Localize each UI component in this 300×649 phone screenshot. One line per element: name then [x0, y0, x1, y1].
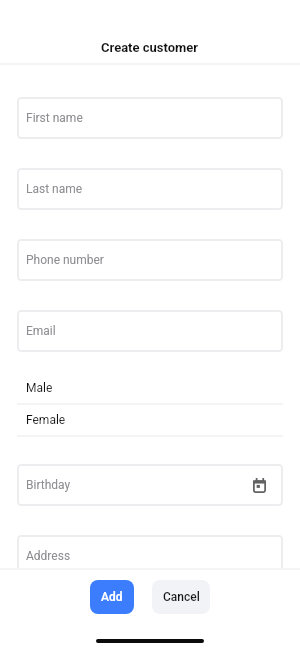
button[interactable]: Male	[17, 372, 283, 403]
staticText: Add	[101, 590, 123, 604]
staticText: Female	[26, 413, 66, 427]
button[interactable]: Add	[90, 580, 134, 614]
staticText: Birthday	[26, 478, 71, 492]
staticText: Create customer	[101, 40, 199, 55]
other: Pick date	[253, 478, 266, 493]
staticText: Male	[26, 381, 53, 395]
button[interactable]: Cancel	[152, 580, 210, 614]
staticText: Email	[26, 324, 56, 338]
button[interactable]: Phone number	[17, 239, 283, 281]
staticText: First name	[26, 111, 83, 125]
button[interactable]: Address	[17, 535, 283, 577]
button[interactable]: Email	[17, 310, 283, 352]
button[interactable]: First name	[17, 97, 283, 139]
staticText: Cancel	[163, 590, 200, 604]
staticText: Address	[26, 549, 71, 563]
button[interactable]: Last name	[17, 168, 283, 210]
staticText: Phone number	[26, 253, 104, 267]
staticText: Last name	[26, 182, 83, 196]
button[interactable]: Female	[17, 405, 283, 435]
button[interactable]: Birthday	[17, 464, 283, 506]
